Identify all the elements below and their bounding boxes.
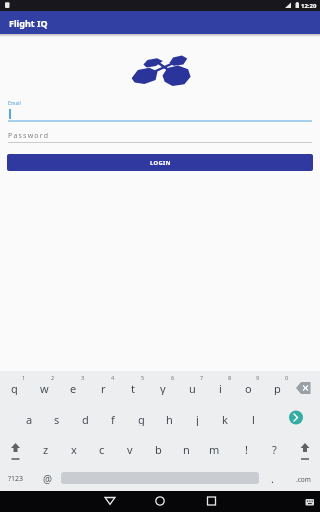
button[interactable]: h	[156, 412, 182, 426]
staticText: @	[43, 472, 52, 486]
staticText: 8	[228, 374, 232, 381]
button[interactable]: !	[233, 442, 259, 456]
staticText: x	[71, 442, 77, 456]
staticText: v	[127, 442, 133, 456]
button[interactable]: n	[173, 442, 199, 456]
button[interactable]: r	[90, 381, 116, 395]
staticText: 12:20	[301, 2, 317, 10]
button[interactable]: o	[235, 381, 261, 395]
button[interactable]: d	[72, 412, 98, 426]
staticText: u	[189, 381, 196, 395]
staticText: Email	[8, 100, 21, 107]
button[interactable]: ?	[261, 442, 287, 456]
staticText: c	[99, 442, 105, 456]
button[interactable]: .com	[290, 472, 316, 486]
button[interactable]: b	[145, 442, 171, 456]
staticText: j	[196, 412, 199, 426]
staticText: 1	[22, 374, 26, 381]
staticText: i	[219, 381, 222, 395]
button[interactable]	[197, 491, 227, 512]
staticText: a	[26, 412, 33, 426]
staticText: Flight IQ	[9, 17, 48, 29]
button[interactable]: g	[128, 412, 154, 426]
button[interactable]: e	[60, 381, 86, 395]
staticText: 3	[81, 374, 85, 381]
button[interactable]: a	[16, 412, 42, 426]
staticText: n	[183, 442, 190, 456]
button[interactable]: i	[207, 381, 233, 395]
button[interactable]: z	[33, 442, 59, 456]
staticText: m	[209, 442, 220, 456]
staticText: 2	[51, 374, 55, 381]
staticText: ?123	[8, 474, 24, 484]
button[interactable]: LOGIN	[7, 154, 313, 171]
staticText: f	[111, 412, 115, 426]
staticText: 4	[111, 374, 115, 381]
button[interactable]: t	[120, 381, 146, 395]
button[interactable]: k	[212, 412, 238, 426]
staticText: d	[82, 412, 89, 426]
staticText: 6	[171, 374, 175, 381]
staticText: z	[43, 442, 49, 456]
staticText: g	[138, 412, 145, 426]
button[interactable]: u	[179, 381, 205, 395]
button[interactable]: l	[240, 412, 266, 426]
button[interactable]: q	[1, 381, 27, 395]
staticText: k	[222, 412, 228, 426]
staticText: h	[166, 412, 173, 426]
button[interactable]	[95, 491, 125, 512]
button[interactable]: m	[201, 442, 227, 456]
staticText: q	[11, 381, 18, 395]
button[interactable]: y	[150, 381, 176, 395]
staticText: .com	[296, 475, 311, 484]
staticText: t	[131, 381, 135, 395]
button[interactable]: .	[259, 471, 285, 485]
staticText: b	[155, 442, 162, 456]
button[interactable]	[145, 491, 175, 512]
staticText: e	[70, 381, 77, 395]
staticText: 0	[285, 374, 289, 381]
staticText: ?	[272, 442, 277, 456]
staticText: 7	[200, 374, 204, 381]
button[interactable]: Flight IQ	[0, 11, 320, 34]
staticText: 5	[141, 374, 145, 381]
staticText: s	[54, 412, 60, 426]
staticText: p	[274, 381, 281, 395]
staticText: y	[160, 381, 166, 395]
button[interactable]: @	[34, 472, 60, 486]
button[interactable]: j	[184, 412, 210, 426]
button[interactable]: ?123	[3, 472, 29, 486]
button[interactable]: w	[31, 381, 57, 395]
staticText: o	[245, 381, 252, 395]
staticText: w	[40, 381, 49, 395]
staticText: !	[245, 442, 248, 456]
staticText: LOGIN	[150, 159, 171, 167]
button[interactable]: f	[100, 412, 126, 426]
button[interactable]: v	[117, 442, 143, 456]
button[interactable]: x	[61, 442, 87, 456]
button[interactable]: p	[264, 381, 290, 395]
button[interactable]: c	[89, 442, 115, 456]
button[interactable]: s	[44, 412, 70, 426]
staticText: 9	[256, 374, 260, 381]
staticText: r	[101, 381, 106, 395]
staticText: .	[271, 471, 274, 485]
staticText: Password	[8, 131, 50, 141]
staticText: l	[252, 412, 255, 426]
